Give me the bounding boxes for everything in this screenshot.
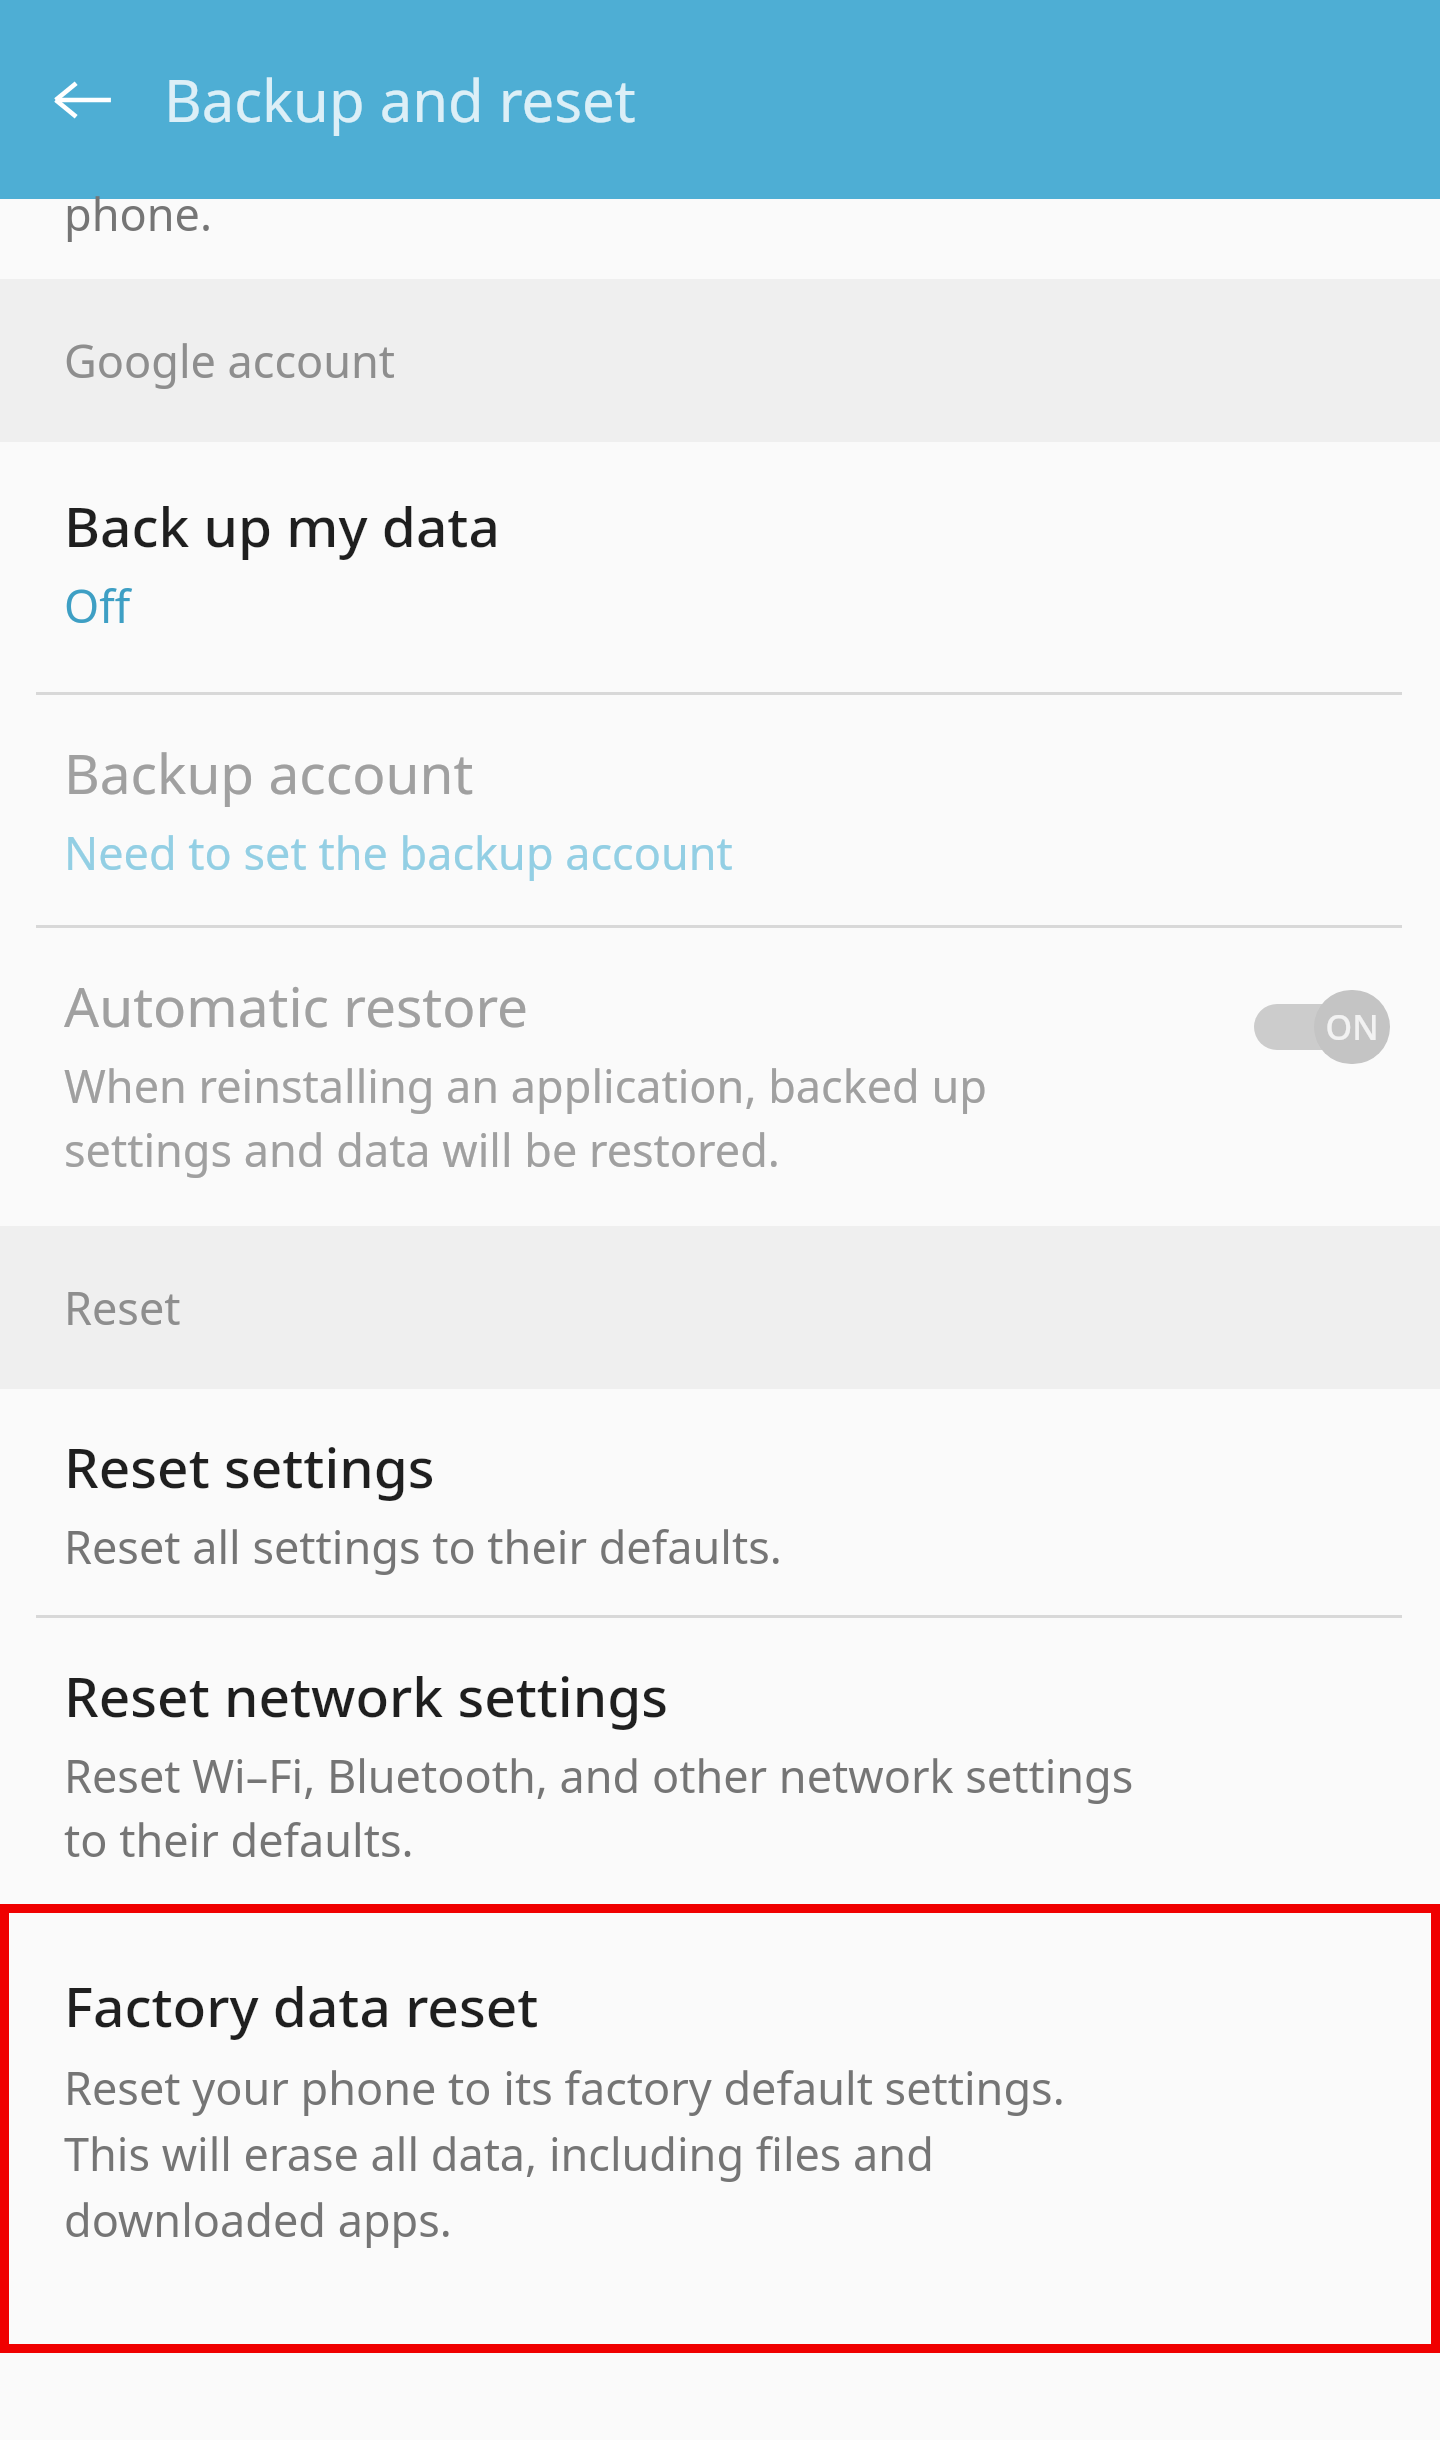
button[interactable]: Back up my data (0, 442, 1440, 692)
button[interactable]: Reset network settings (0, 1618, 1440, 1904)
button[interactable]: Automatic restore (0, 928, 1440, 1226)
staticText: Reset network settings (64, 1658, 669, 1733)
staticText: Reset your phone to its factory default … (64, 2057, 1065, 2250)
staticText: Backup and reset (164, 60, 636, 139)
staticText: When reinstalling an application, backed… (64, 1055, 987, 1180)
staticText: Reset all settings to their defaults. (64, 1516, 782, 1577)
button[interactable]: Reset settings (0, 1389, 1440, 1615)
staticText: Automatic restore (64, 968, 529, 1043)
staticText: Reset (64, 1277, 181, 1338)
staticText: Factory data reset (64, 1968, 539, 2043)
staticText: Reset settings (64, 1429, 435, 1504)
staticText: Off (64, 575, 131, 636)
button[interactable]: Automatic restore toggle, On (1250, 990, 1400, 1064)
staticText: Back up my data (64, 488, 500, 563)
staticText: Reset Wi–Fi, Bluetooth, and other networ… (64, 1745, 1134, 1870)
button[interactable]: Backup account (0, 695, 1440, 925)
staticText: Google account (64, 330, 396, 391)
staticText: phone. (64, 183, 212, 244)
staticText: Need to set the backup account (64, 822, 733, 883)
staticText: Backup account (64, 735, 474, 810)
button[interactable]: Factory data reset (0, 1904, 1440, 2250)
staticText: ON (1325, 1004, 1379, 1050)
button[interactable]: Back (38, 55, 128, 145)
